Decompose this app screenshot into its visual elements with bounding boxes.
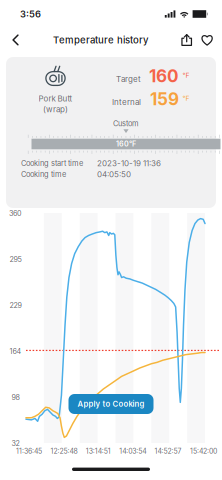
staticText: Internal: [112, 97, 141, 107]
staticText: 98: [11, 393, 19, 402]
button[interactable]: Back: [6, 30, 25, 50]
staticText: (wrap): [43, 104, 68, 114]
staticText: Cooking time: [21, 170, 66, 179]
staticText: 14:03:54: [119, 447, 146, 455]
button[interactable]: Apply to Cooking: [68, 394, 153, 414]
staticText: 159: [150, 89, 179, 109]
staticText: 164: [9, 347, 21, 356]
staticText: 11:36:45: [16, 447, 42, 455]
staticText: 3:56: [20, 8, 41, 20]
staticText: 12:25:48: [50, 447, 77, 455]
button[interactable]: Share: [177, 31, 196, 49]
staticText: 2023-10-19 11:36: [97, 159, 161, 168]
staticText: Temperature history: [53, 34, 149, 46]
staticText: 15:42:00: [190, 447, 217, 455]
button[interactable]: Favourite: [196, 31, 219, 49]
staticText: 160°F: [116, 140, 136, 148]
staticText: Custom: [113, 119, 139, 128]
staticText: Pork Butt: [38, 94, 72, 103]
staticText: 295: [9, 255, 21, 264]
staticText: °F: [182, 71, 189, 79]
staticText: 04:05:50: [97, 170, 131, 179]
staticText: 229: [9, 301, 21, 310]
staticText: 14:52:57: [155, 447, 182, 455]
staticText: 32: [11, 439, 19, 448]
staticText: 360: [9, 209, 22, 218]
staticText: Cooking start time: [21, 159, 83, 168]
staticText: 160: [149, 66, 179, 86]
staticText: 13:14:51: [86, 447, 111, 455]
staticText: Target: [116, 74, 141, 84]
staticText: Apply to Cooking: [77, 399, 144, 409]
staticText: °F: [182, 94, 189, 102]
